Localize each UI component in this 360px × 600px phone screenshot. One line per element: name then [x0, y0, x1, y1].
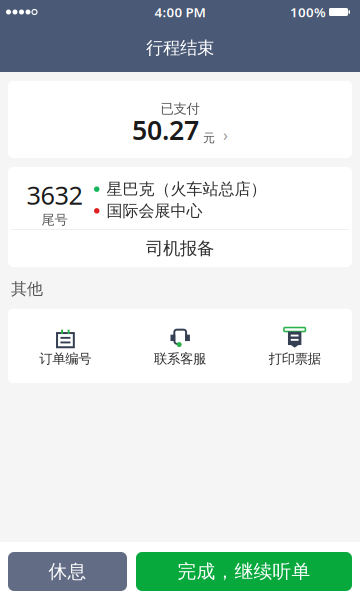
staticText: 元 — [203, 131, 215, 145]
staticText: 打印票据 — [269, 351, 321, 367]
button[interactable]: 休息 — [8, 552, 127, 591]
staticText: 已支付 — [160, 101, 199, 117]
staticText: 联系客服 — [154, 351, 206, 367]
staticText: 3632 — [26, 178, 82, 212]
staticText: 50.27 — [132, 112, 199, 147]
staticText: 尾号 — [41, 212, 67, 228]
button[interactable]: 联系客服 — [123, 309, 237, 383]
staticText: 行程结束 — [146, 37, 214, 59]
staticText: 订单编号 — [39, 351, 91, 367]
staticText: 星巴克（火车站总店） — [106, 179, 266, 199]
staticText: 4:00 PM — [154, 3, 205, 21]
button[interactable]: 完成，继续听单 — [136, 552, 352, 591]
button[interactable]: 已支付 — [8, 81, 352, 158]
button[interactable]: 打印票据 — [237, 309, 352, 383]
staticText: 国际会展中心 — [106, 201, 202, 221]
button[interactable]: 订单编号 — [8, 309, 123, 383]
button[interactable]: 司机报备 — [8, 230, 352, 267]
staticText: 完成，继续听单 — [177, 560, 310, 583]
staticText: 100% — [290, 3, 326, 21]
staticText: 司机报备 — [146, 238, 214, 259]
staticText: 其他 — [11, 279, 43, 299]
staticText: › — [223, 124, 228, 145]
staticText: 休息 — [48, 560, 86, 583]
